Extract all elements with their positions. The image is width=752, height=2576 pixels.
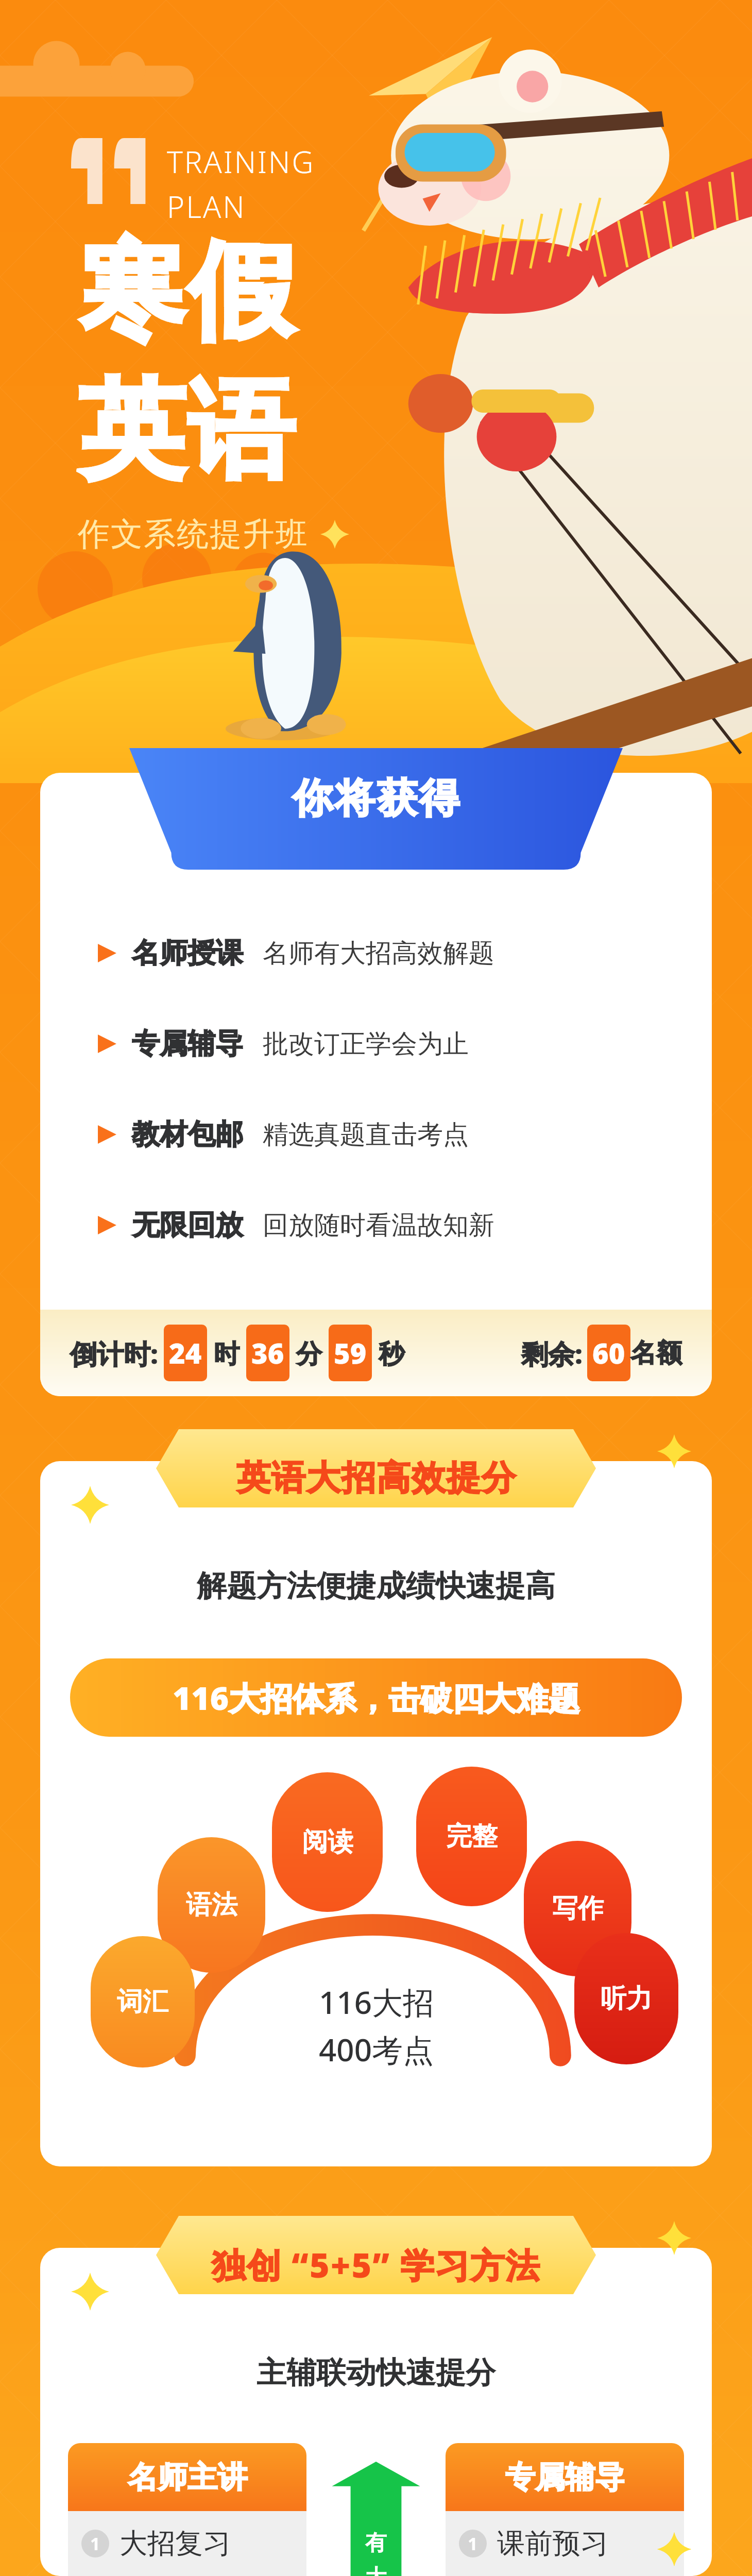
staticText: TRAINING bbox=[167, 141, 315, 182]
button[interactable]: 阅读 bbox=[272, 1772, 383, 1912]
button[interactable]: 专属辅导 bbox=[446, 2443, 684, 2511]
staticText: 专属辅导 bbox=[132, 1026, 243, 1061]
button[interactable]: 英语大招高效提分 bbox=[156, 1429, 596, 1507]
staticText: 1 bbox=[468, 2532, 478, 2555]
staticText: 大 bbox=[365, 2564, 387, 2576]
staticText: 剩余: bbox=[521, 1335, 583, 1371]
button[interactable]: 教材包邮 bbox=[40, 1089, 712, 1180]
staticText: 课前预习 bbox=[497, 2526, 608, 2561]
button[interactable]: 1 bbox=[446, 2511, 684, 2576]
button[interactable]: 名师授课 bbox=[40, 908, 712, 998]
staticText: 写作 bbox=[552, 1892, 604, 1925]
staticText: 专属辅导 bbox=[505, 2459, 625, 2496]
button[interactable]: 116大招体系，击破四大难题 bbox=[70, 1658, 682, 1737]
staticText: 116大招 bbox=[319, 1981, 434, 2023]
button[interactable]: 听力 bbox=[574, 1933, 678, 2064]
staticText: 无限回放 bbox=[132, 1208, 243, 1243]
staticText: 名师主讲 bbox=[128, 2459, 247, 2496]
staticText: 独创 “5+5” 学习方法 bbox=[212, 2241, 541, 2287]
staticText: 听力 bbox=[601, 1982, 652, 2015]
button[interactable]: 写作 bbox=[524, 1841, 631, 1976]
staticText: 完整 bbox=[446, 1820, 498, 1853]
staticText: 语法 bbox=[186, 1889, 237, 1921]
staticText: 解题方法便捷成绩快速提高 bbox=[40, 1567, 712, 1605]
staticText: 秒 bbox=[372, 1335, 404, 1370]
staticText: 作文系统提升班 bbox=[77, 514, 308, 554]
staticText: 59 bbox=[334, 1334, 367, 1372]
button[interactable]: 词汇 bbox=[91, 1936, 195, 2067]
staticText: 有 bbox=[365, 2530, 387, 2557]
button[interactable]: 名师主讲 bbox=[68, 2443, 306, 2511]
button[interactable]: 独创 “5+5” 学习方法 bbox=[156, 2216, 596, 2294]
staticText: PLAN bbox=[167, 186, 246, 227]
staticText: 英语大招高效提分 bbox=[236, 1456, 516, 1499]
staticText: 24 bbox=[169, 1334, 202, 1372]
button[interactable]: 无限回放 bbox=[40, 1180, 712, 1270]
staticText: 大招复习 bbox=[119, 2526, 231, 2561]
staticText: 倒计时: bbox=[70, 1335, 159, 1371]
staticText: 1 bbox=[90, 2532, 100, 2555]
staticText: 116大招体系，击破四大难题 bbox=[173, 1676, 580, 1720]
staticText: 精选真题直击考点 bbox=[263, 1118, 469, 1151]
button[interactable]: 你将获得 bbox=[129, 748, 623, 870]
staticText: 英语 bbox=[77, 365, 296, 499]
staticText: 名师有大招高效解题 bbox=[263, 937, 494, 970]
staticText: 批改订正学会为止 bbox=[263, 1028, 469, 1060]
staticText: 阅读 bbox=[302, 1826, 353, 1858]
staticText: 教材包邮 bbox=[132, 1117, 243, 1152]
staticText: 60 bbox=[592, 1334, 625, 1372]
staticText: 400考点 bbox=[319, 2028, 434, 2071]
button[interactable]: 语法 bbox=[158, 1837, 265, 1973]
button[interactable]: 专属辅导 bbox=[40, 998, 712, 1089]
staticText: 时 bbox=[207, 1335, 246, 1370]
staticText: 回放随时看温故知新 bbox=[263, 1209, 494, 1242]
staticText: 主辅联动快速提分 bbox=[40, 2354, 712, 2392]
staticText: 词汇 bbox=[117, 1986, 168, 2018]
button[interactable]: 1 bbox=[68, 2511, 306, 2576]
staticText: 名额 bbox=[630, 1337, 682, 1369]
staticText: 分 bbox=[289, 1335, 329, 1370]
staticText: 你将获得 bbox=[292, 773, 460, 824]
staticText: 36 bbox=[251, 1334, 284, 1372]
staticText: 名师授课 bbox=[132, 936, 243, 971]
staticText: 寒假 bbox=[77, 226, 296, 360]
button[interactable]: 完整 bbox=[416, 1767, 527, 1906]
